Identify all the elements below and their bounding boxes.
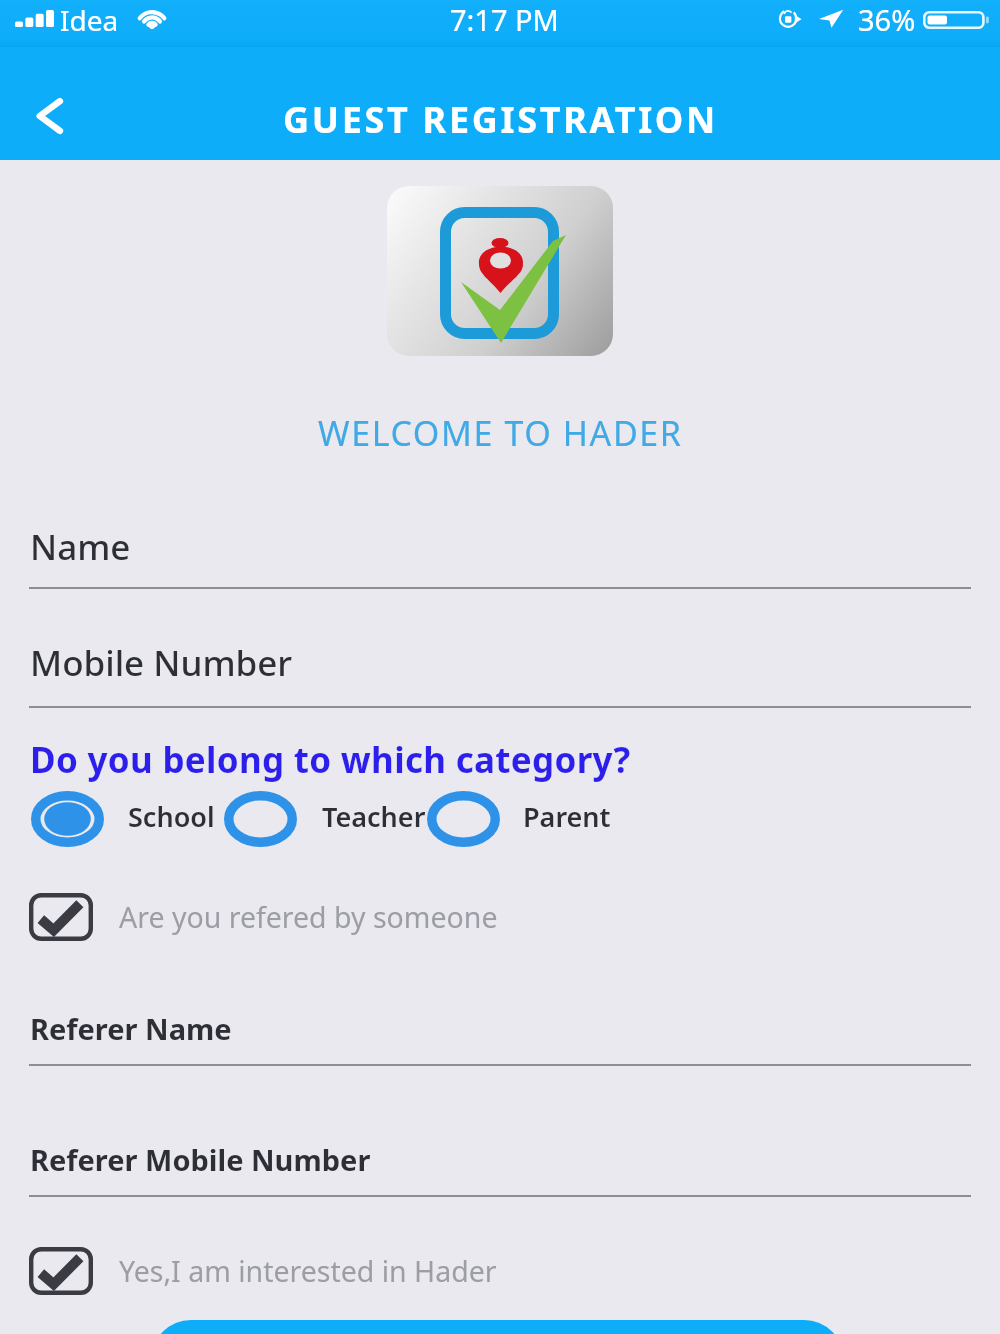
staticText: 7:17 PM (450, 0, 559, 39)
staticText: Mobile Number (30, 639, 293, 687)
button[interactable]: Teacher (224, 784, 426, 849)
staticText: Parent (523, 798, 611, 835)
staticText: Referer Name (30, 1009, 232, 1048)
staticText: Teacher (322, 798, 426, 835)
staticText: Idea (60, 1, 119, 39)
staticText: GUEST REGISTRATION (283, 95, 718, 144)
button[interactable]: SUBMIT (151, 1320, 844, 1334)
staticText: Referer Mobile Number (30, 1140, 371, 1179)
button[interactable]: Yes,I am interested in Hader (29, 1241, 1000, 1301)
staticText: Do you belong to which category? (30, 736, 631, 784)
staticText: Are you refered by someone (119, 898, 498, 937)
staticText: Name (30, 523, 131, 571)
staticText: School (128, 798, 215, 835)
staticText: Yes,I am interested in Hader (119, 1252, 497, 1291)
button[interactable]: School (31, 784, 219, 849)
button[interactable]: Parent (427, 784, 612, 849)
staticText: WELCOME TO HADER (318, 410, 683, 456)
staticText: 36% (858, 0, 916, 39)
button[interactable]: Back (22, 86, 82, 146)
button[interactable]: Are you refered by someone (29, 887, 1000, 947)
